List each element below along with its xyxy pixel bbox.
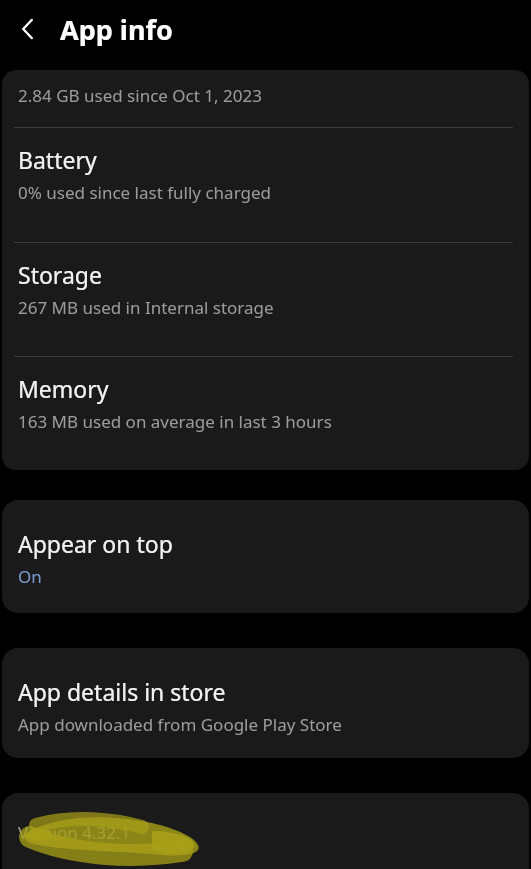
button[interactable]: Storage <box>2 243 529 356</box>
staticText: Storage <box>18 259 102 290</box>
button[interactable]: Appear on top <box>2 500 529 613</box>
button[interactable]: Back <box>6 7 50 51</box>
staticText: Memory <box>18 373 109 404</box>
staticText: 267 MB used in Internal storage <box>18 296 274 319</box>
button[interactable]: App details in store <box>2 648 529 758</box>
button[interactable]: Appear on top <box>2 500 529 613</box>
staticText: 0% used since last fully charged <box>18 181 271 204</box>
staticText: 2.84 GB used since Oct 1, 2023 <box>18 84 262 107</box>
staticText: Appear on top <box>18 528 173 559</box>
button[interactable]: Battery <box>2 128 529 242</box>
staticText: Battery <box>18 144 97 175</box>
button[interactable]: 2.84 GB used since Oct 1, 2023 <box>2 70 529 127</box>
staticText: Version 4.32.1 <box>18 821 131 844</box>
staticText: On <box>18 565 42 588</box>
button[interactable]: Version 4.32.1 <box>2 793 529 869</box>
staticText: 163 MB used on average in last 3 hours <box>18 410 332 433</box>
button[interactable]: Memory <box>2 357 529 470</box>
staticText: App downloaded from Google Play Store <box>18 713 342 736</box>
staticText: App details in store <box>18 676 226 707</box>
staticText: App info <box>60 11 173 48</box>
button[interactable]: App details in store <box>2 648 529 758</box>
